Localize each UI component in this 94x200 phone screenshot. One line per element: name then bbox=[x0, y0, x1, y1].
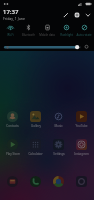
button[interactable]: Flashlight bbox=[57, 22, 75, 37]
button[interactable]: Bluetooth bbox=[19, 22, 37, 37]
staticText: Gallery bbox=[31, 124, 41, 128]
button[interactable]: Settings bbox=[71, 9, 82, 20]
staticText: 17:37 bbox=[3, 8, 19, 16]
staticText: Friday, 1 June bbox=[3, 16, 25, 21]
staticText: Instagram bbox=[74, 152, 89, 156]
button[interactable]: YouTube bbox=[71, 111, 92, 128]
button[interactable]: Mobile data bbox=[38, 22, 56, 37]
staticText: Wi-Fi bbox=[7, 33, 14, 37]
staticText: Flashlight bbox=[60, 33, 73, 37]
button[interactable]: Play Store bbox=[2, 139, 23, 156]
button[interactable]: Music bbox=[48, 111, 69, 128]
staticText: YouTube bbox=[75, 124, 88, 128]
button[interactable]: Collapse bbox=[82, 9, 93, 20]
staticText: Mobile data bbox=[39, 33, 55, 37]
staticText: Contacts bbox=[6, 124, 19, 128]
button[interactable] bbox=[48, 176, 69, 187]
button[interactable]: Contacts bbox=[2, 111, 23, 128]
staticText: Calculator bbox=[28, 152, 43, 156]
button[interactable]: Edit bbox=[60, 9, 71, 20]
staticText: Music bbox=[54, 124, 63, 128]
button[interactable]: Instagram bbox=[71, 139, 92, 156]
button[interactable]: Calculator bbox=[25, 139, 46, 156]
button[interactable]: Auto-rotate bbox=[75, 22, 93, 37]
staticText: Auto-rotate bbox=[76, 33, 92, 37]
button[interactable] bbox=[25, 176, 46, 187]
staticText: Bluetooth bbox=[22, 33, 35, 37]
button[interactable]: Brightness bbox=[4, 42, 81, 51]
button[interactable]: Wi-Fi bbox=[1, 22, 19, 37]
button[interactable]: Gallery bbox=[25, 111, 46, 128]
staticText: Settings bbox=[53, 152, 65, 156]
button[interactable]: Auto brightness bbox=[83, 43, 90, 50]
button[interactable]: Settings bbox=[48, 139, 69, 156]
button[interactable] bbox=[71, 176, 92, 187]
button[interactable] bbox=[2, 176, 23, 187]
staticText: Play Store bbox=[6, 152, 20, 156]
